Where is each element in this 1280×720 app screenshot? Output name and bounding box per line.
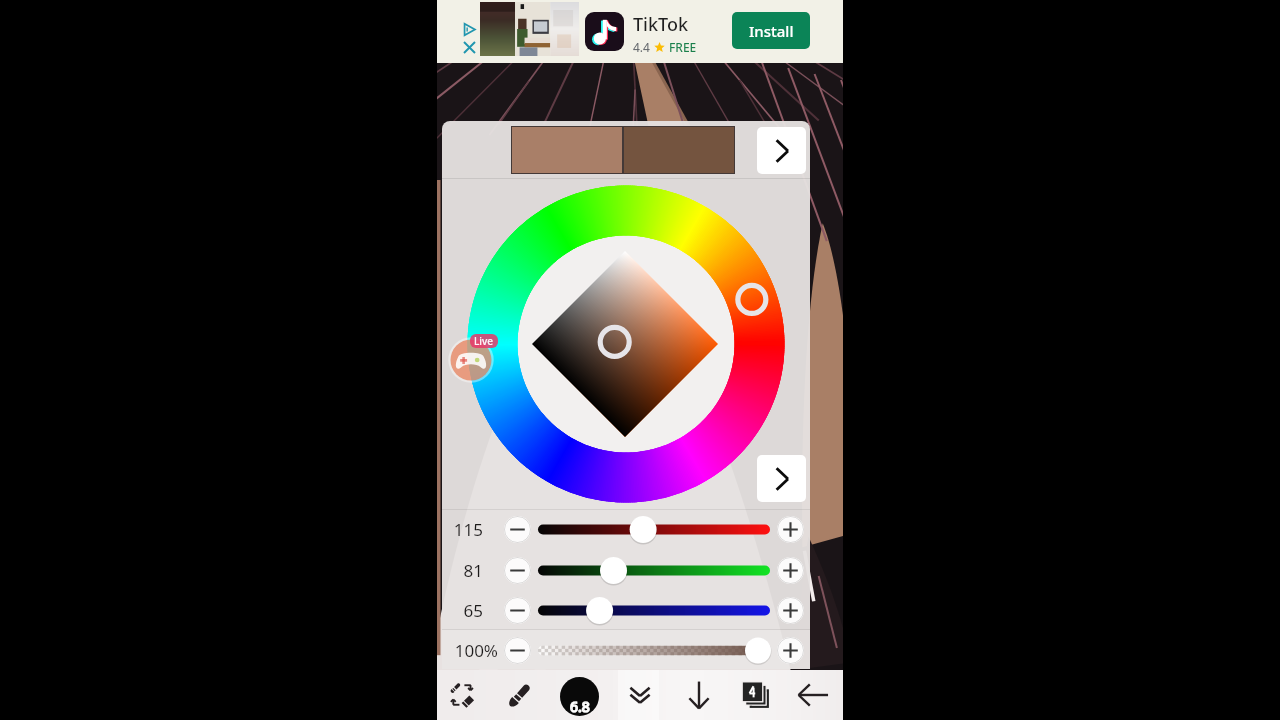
staticText: 81 — [442, 559, 483, 582]
button[interactable]: Next palette — [757, 455, 806, 502]
button[interactable]: Increase 65 — [777, 597, 804, 624]
button[interactable]: Primary colour swatch — [511, 126, 623, 174]
button[interactable]: Merge down — [680, 670, 718, 720]
staticText: TikTok — [633, 12, 688, 37]
button[interactable]: Collapse panel — [621, 670, 659, 720]
button[interactable]: Brush size 6.8 — [560, 677, 599, 716]
button[interactable]: Decrease 81 — [504, 557, 531, 584]
button[interactable]: Secondary colour swatch — [623, 126, 735, 174]
staticText: Live — [474, 334, 494, 348]
button[interactable]: Decrease opacity — [504, 637, 531, 664]
button[interactable]: Layers: 4 — [737, 670, 775, 720]
button[interactable]: Back — [794, 670, 832, 720]
staticText: 6.8 — [570, 697, 590, 716]
button[interactable]: Decrease 65 — [504, 597, 531, 624]
staticText: 65 — [442, 599, 483, 622]
staticText: 4.4 — [633, 39, 650, 55]
staticText: 115 — [442, 518, 483, 541]
button[interactable]: Live — [449, 332, 499, 382]
button[interactable]: Color wheel — [463, 181, 789, 507]
staticText: FREE — [669, 39, 697, 55]
button[interactable]: Decrease 115 — [504, 516, 531, 543]
button[interactable]: Open palette — [757, 127, 806, 174]
button[interactable]: Increase 81 — [777, 557, 804, 584]
staticText: 100% — [442, 639, 498, 662]
staticText: 6.8 — [570, 697, 590, 716]
button[interactable]: Increase opacity — [777, 637, 804, 664]
button[interactable]: Swap brush and eraser — [443, 670, 481, 720]
staticText: Install — [749, 21, 794, 41]
button[interactable]: Increase 115 — [777, 516, 804, 543]
button[interactable]: Install — [732, 12, 810, 49]
button[interactable]: Brush — [501, 670, 539, 720]
